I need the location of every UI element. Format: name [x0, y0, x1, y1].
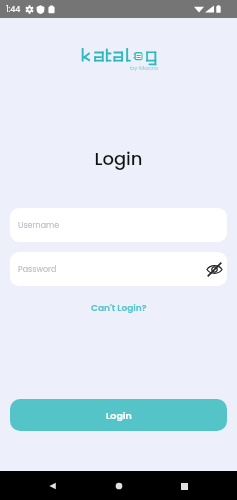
button[interactable]: Password	[10, 252, 227, 286]
button[interactable]: Login	[10, 399, 227, 431]
staticText: Login	[0, 146, 237, 171]
staticText: 1:44	[6, 4, 21, 15]
button[interactable]: Can't Login?	[83, 299, 155, 318]
staticText: by Macro	[130, 64, 158, 72]
button[interactable]: Home	[106, 473, 132, 499]
staticText: Login	[106, 409, 132, 422]
staticText: Username	[18, 220, 60, 231]
staticText: Can't Login?	[91, 302, 147, 315]
button[interactable]: Username	[10, 208, 227, 242]
button[interactable]: Show password	[205, 260, 223, 278]
staticText: Password	[18, 264, 57, 275]
button[interactable]: Back	[40, 473, 66, 499]
button[interactable]: Recents	[171, 473, 197, 499]
